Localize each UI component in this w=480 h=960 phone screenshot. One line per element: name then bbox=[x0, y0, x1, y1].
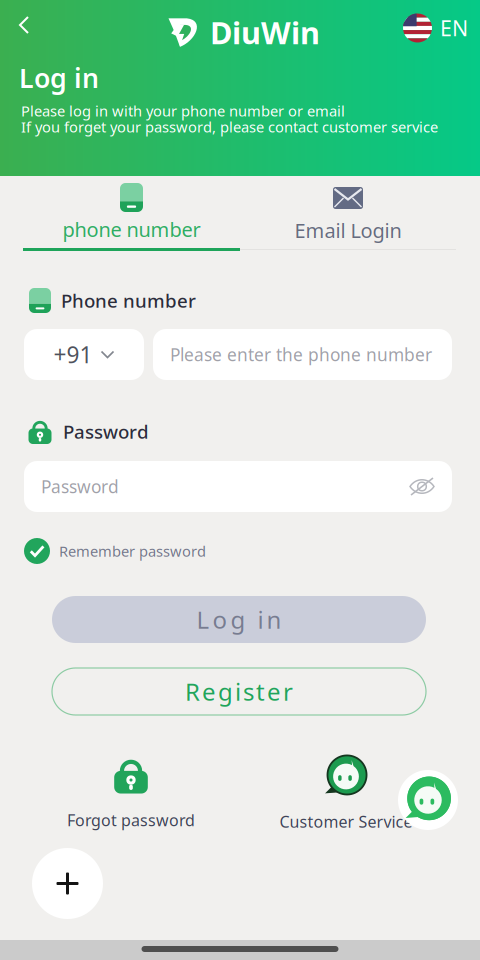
staticText: r bbox=[283, 676, 293, 707]
button[interactable]: Chat support bbox=[398, 770, 458, 830]
staticText: Forgot password bbox=[67, 809, 195, 831]
staticText: i bbox=[235, 676, 241, 707]
staticText: Phone number bbox=[61, 288, 196, 313]
button[interactable]: phone number bbox=[23, 176, 240, 251]
staticText: Password bbox=[41, 475, 119, 498]
button[interactable]: Language English bbox=[397, 6, 474, 50]
staticText: e bbox=[202, 676, 216, 707]
staticText: g bbox=[218, 676, 233, 707]
staticText: Customer Service bbox=[279, 811, 412, 832]
staticText: s bbox=[243, 676, 254, 707]
button[interactable]: L bbox=[52, 596, 426, 643]
staticText: +91 bbox=[53, 339, 92, 369]
button[interactable]: Customer Service bbox=[256, 754, 436, 832]
staticText: DiuWin bbox=[210, 12, 320, 53]
staticText: o bbox=[212, 604, 227, 635]
button[interactable]: Remember password bbox=[24, 538, 206, 564]
button[interactable]: Please enter the phone number bbox=[153, 329, 452, 380]
staticText: Email Login bbox=[294, 217, 401, 244]
staticText: R bbox=[185, 676, 200, 707]
staticText: If you forget your password, please cont… bbox=[21, 117, 438, 136]
button[interactable]: Email Login bbox=[240, 176, 456, 251]
staticText: e bbox=[267, 676, 281, 707]
staticText: g bbox=[230, 604, 245, 635]
button[interactable]: R bbox=[52, 668, 426, 715]
staticText: Log in bbox=[19, 60, 99, 95]
staticText: Remember password bbox=[59, 541, 206, 561]
staticText: phone number bbox=[62, 216, 200, 243]
button[interactable]: Password bbox=[24, 461, 452, 512]
staticText: i bbox=[257, 604, 263, 635]
staticText: Please enter the phone number bbox=[170, 343, 432, 366]
button[interactable]: +91 bbox=[24, 329, 144, 380]
button[interactable]: Forgot password bbox=[51, 757, 211, 831]
staticText: L bbox=[196, 604, 209, 635]
staticText: Please log in with your phone number or … bbox=[21, 101, 345, 120]
staticText: n bbox=[266, 604, 281, 635]
button[interactable]: Add bbox=[32, 848, 103, 919]
staticText: t bbox=[256, 676, 265, 707]
staticText: EN bbox=[440, 14, 468, 42]
button[interactable]: Back bbox=[2, 3, 46, 47]
staticText: Password bbox=[63, 419, 149, 444]
